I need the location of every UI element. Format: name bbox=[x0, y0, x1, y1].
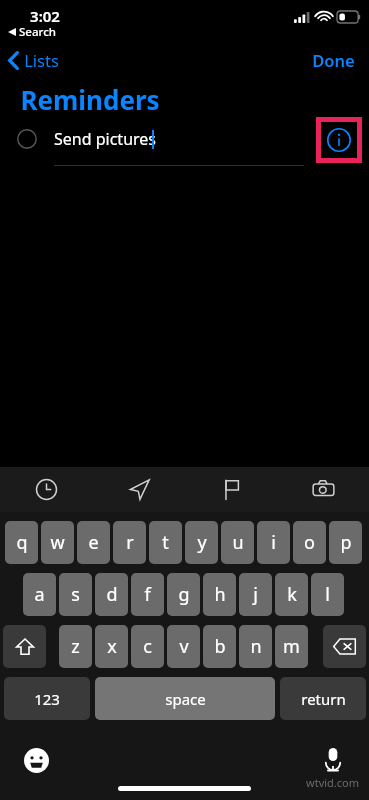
staticText: v bbox=[179, 634, 189, 659]
button[interactable]: Backspace bbox=[323, 625, 366, 668]
button[interactable]: v bbox=[167, 625, 200, 668]
button[interactable]: p bbox=[329, 521, 362, 564]
staticText: y bbox=[197, 530, 207, 555]
staticText: k bbox=[287, 582, 297, 607]
button[interactable]: l bbox=[311, 573, 344, 616]
staticText: 3:02 bbox=[30, 6, 60, 26]
button[interactable]: k bbox=[275, 573, 308, 616]
button[interactable]: u bbox=[221, 521, 254, 564]
button[interactable]: t bbox=[149, 521, 182, 564]
button[interactable]: r bbox=[113, 521, 146, 564]
button[interactable]: a bbox=[23, 573, 56, 616]
button[interactable]: b bbox=[203, 625, 236, 668]
staticText: j bbox=[253, 582, 258, 607]
button[interactable]: Lists bbox=[0, 45, 69, 75]
staticText: b bbox=[214, 634, 226, 659]
staticText: e bbox=[88, 530, 99, 555]
staticText: space bbox=[165, 689, 206, 709]
staticText: Done bbox=[312, 49, 355, 71]
button[interactable]: f bbox=[131, 573, 164, 616]
staticText: l bbox=[325, 582, 330, 607]
button[interactable]: i bbox=[257, 521, 290, 564]
staticText: a bbox=[34, 582, 45, 607]
button[interactable]: Dictate bbox=[313, 740, 353, 780]
staticText: t bbox=[162, 530, 169, 555]
button[interactable]: y bbox=[185, 521, 218, 564]
staticText: d bbox=[106, 582, 118, 607]
staticText: q bbox=[16, 530, 28, 555]
button[interactable]: d bbox=[95, 573, 128, 616]
button[interactable]: Details bbox=[317, 118, 361, 162]
staticText: Send pictures bbox=[54, 128, 156, 150]
button[interactable]: Done bbox=[298, 45, 369, 75]
button[interactable]: Flag bbox=[185, 467, 277, 512]
button[interactable]: Date bbox=[0, 467, 93, 512]
staticText: o bbox=[304, 530, 315, 555]
button[interactable]: h bbox=[203, 573, 236, 616]
button[interactable]: Camera bbox=[277, 467, 369, 512]
staticText: wtvid.com bbox=[306, 775, 359, 790]
staticText: z bbox=[71, 634, 80, 659]
button[interactable]: m bbox=[275, 625, 308, 668]
staticText: r bbox=[126, 530, 134, 555]
staticText: s bbox=[71, 582, 80, 607]
staticText: i bbox=[271, 530, 276, 555]
button[interactable]: z bbox=[59, 625, 92, 668]
button[interactable]: w bbox=[41, 521, 74, 564]
staticText: c bbox=[143, 634, 152, 659]
button[interactable]: Shift bbox=[3, 625, 46, 668]
staticText: Reminders bbox=[20, 82, 160, 117]
button[interactable]: e bbox=[77, 521, 110, 564]
staticText: 123 bbox=[34, 689, 60, 709]
staticText: u bbox=[232, 530, 244, 555]
staticText: return bbox=[301, 689, 346, 709]
button[interactable]: c bbox=[131, 625, 164, 668]
staticText: g bbox=[178, 582, 190, 607]
button[interactable]: Emoji bbox=[16, 740, 56, 780]
staticText: h bbox=[214, 582, 226, 607]
button[interactable]: Location bbox=[93, 467, 185, 512]
button[interactable]: g bbox=[167, 573, 200, 616]
staticText: p bbox=[340, 530, 352, 555]
staticText: Search bbox=[19, 24, 56, 40]
staticText: x bbox=[107, 634, 117, 659]
button[interactable]: 123 bbox=[4, 677, 90, 720]
button[interactable]: n bbox=[239, 625, 272, 668]
staticText: f bbox=[144, 582, 151, 607]
button[interactable]: j bbox=[239, 573, 272, 616]
button[interactable]: q bbox=[5, 521, 38, 564]
staticText: Lists bbox=[24, 49, 59, 71]
button[interactable]: x bbox=[95, 625, 128, 668]
button[interactable]: space bbox=[95, 677, 275, 720]
button[interactable]: o bbox=[293, 521, 326, 564]
staticText: n bbox=[250, 634, 262, 659]
staticText: m bbox=[283, 634, 300, 659]
button[interactable]: s bbox=[59, 573, 92, 616]
button[interactable]: Toggle complete bbox=[13, 125, 41, 153]
button[interactable]: return bbox=[280, 677, 366, 720]
staticText: w bbox=[50, 530, 65, 555]
